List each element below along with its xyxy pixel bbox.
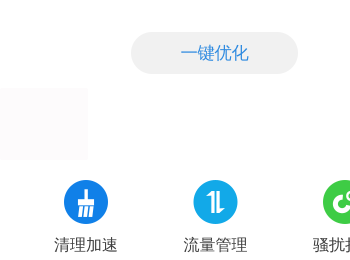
staticText: 骚扰拦截 [313,235,350,255]
button[interactable]: 一键优化 [131,32,298,74]
staticText: 流量管理 [183,235,247,255]
staticText: 一键优化 [180,42,248,64]
button[interactable]: 流量管理 [165,180,265,255]
staticText: 清理加速 [54,235,118,255]
button[interactable]: 骚扰拦截 [295,180,350,255]
button[interactable]: 清理加速 [36,180,136,255]
